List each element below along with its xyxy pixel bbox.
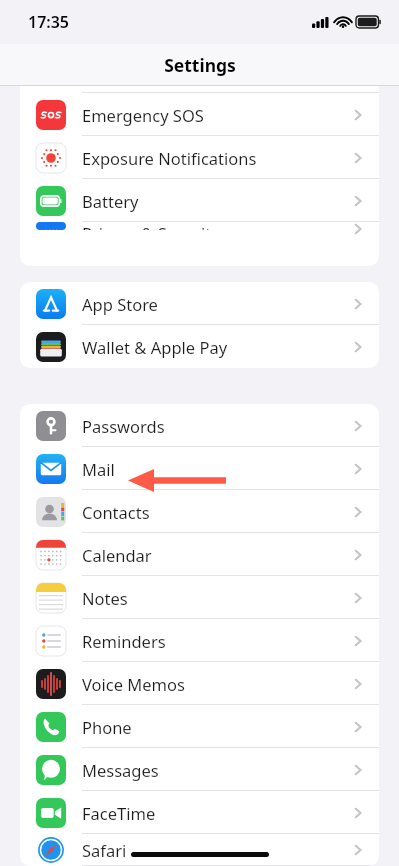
staticText: Wallet & Apple Pay (82, 336, 351, 358)
staticText: Privacy & Security (82, 222, 351, 230)
button[interactable]: Phone (20, 705, 379, 748)
button[interactable]: Privacy & Security (20, 222, 379, 230)
button[interactable]: Passwords (20, 404, 379, 447)
button[interactable]: App Store (20, 282, 379, 325)
button[interactable]: Messages (20, 748, 379, 791)
button[interactable]: Emergency SOS (20, 93, 379, 136)
staticText: App Store (82, 293, 351, 315)
button[interactable]: Voice Memos (20, 662, 379, 705)
staticText: Settings (164, 53, 236, 77)
staticText: Exposure Notifications (82, 147, 351, 169)
button[interactable]: Battery (20, 179, 379, 222)
button[interactable]: Notes (20, 576, 379, 619)
staticText: Calendar (82, 544, 351, 566)
staticText: 17:35 (28, 11, 70, 33)
staticText: Phone (82, 716, 351, 738)
staticText: Passwords (82, 415, 351, 437)
button[interactable]: Mail (20, 447, 379, 490)
button[interactable]: Safari (20, 834, 379, 866)
button[interactable]: Calendar (20, 533, 379, 576)
staticText: Notes (82, 587, 351, 609)
staticText: Emergency SOS (82, 104, 351, 126)
button[interactable]: Contacts (20, 490, 379, 533)
staticText: Mail (82, 458, 351, 480)
button[interactable]: Wallet & Apple Pay (20, 325, 379, 368)
button[interactable]: Hidden (20, 86, 379, 93)
staticText: Battery (82, 190, 351, 212)
staticText: Safari (82, 839, 351, 861)
button[interactable]: FaceTime (20, 791, 379, 834)
button[interactable]: Exposure Notifications (20, 136, 379, 179)
button[interactable]: Reminders (20, 619, 379, 662)
staticText: Contacts (82, 501, 351, 523)
staticText: FaceTime (82, 802, 351, 824)
staticText: Reminders (82, 630, 351, 652)
staticText: Voice Memos (82, 673, 351, 695)
staticText: Messages (82, 759, 351, 781)
